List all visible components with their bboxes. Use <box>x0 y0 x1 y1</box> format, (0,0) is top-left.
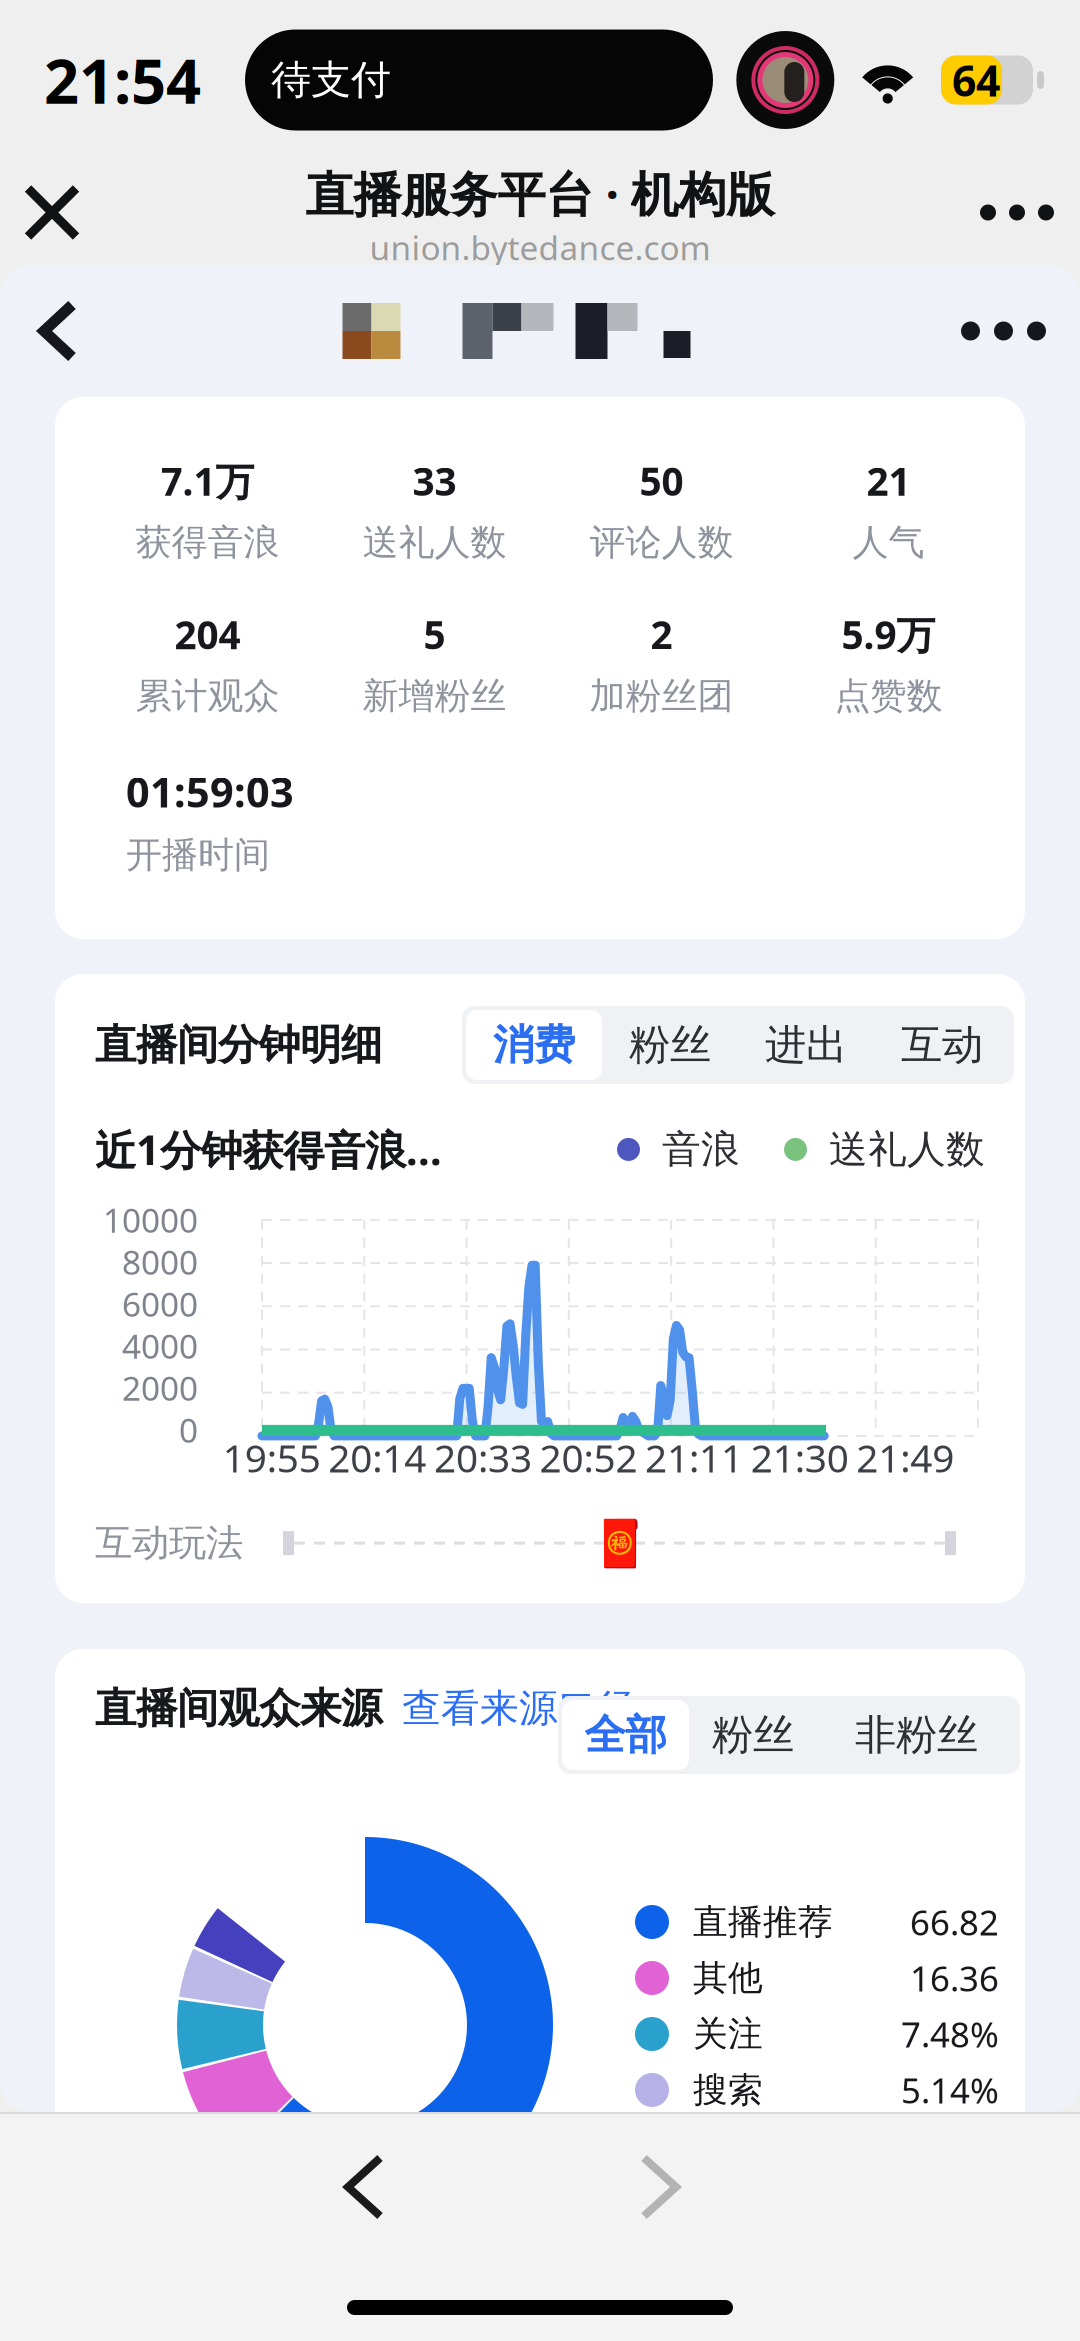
staticText: 0 <box>179 1408 198 1452</box>
button[interactable]: 消费 <box>466 1010 602 1080</box>
staticText: 8000 <box>122 1240 198 1284</box>
button[interactable]: 查看来源口径 <box>382 1685 636 1732</box>
staticText: 21:49 <box>856 1432 954 1483</box>
staticText: 🧧 <box>591 1517 647 1569</box>
button[interactable]: Forward <box>600 2132 720 2242</box>
staticText: 50 <box>639 455 683 506</box>
staticText: 粉丝 <box>629 1020 711 1070</box>
staticText: 互动玩法 <box>95 1520 243 1566</box>
staticText: 搜索 <box>693 2069 763 2111</box>
button[interactable]: 粉丝 <box>689 1700 817 1770</box>
staticText: 10000 <box>103 1198 198 1242</box>
staticText: 66.82 <box>910 1899 999 1945</box>
button[interactable]: More options <box>927 289 1080 372</box>
staticText: 204 <box>174 609 240 660</box>
staticText: 直播间分钟明细 <box>95 1020 382 1070</box>
staticText: 4000 <box>122 1324 198 1368</box>
staticText: 送礼人数 <box>362 520 506 564</box>
staticText: 新增粉丝 <box>362 674 506 718</box>
staticText: 消费 <box>493 1020 575 1070</box>
staticText: 20:33 <box>434 1432 532 1483</box>
staticText: 近1分钟获得音浪... <box>95 1122 442 1177</box>
staticText: 21 <box>866 455 910 506</box>
staticText: 其他 <box>693 1957 763 1999</box>
staticText: 人气 <box>852 520 924 564</box>
staticText: 5.9万 <box>841 609 935 660</box>
staticText: 33 <box>412 455 456 506</box>
staticText: 21:54 <box>44 39 201 121</box>
staticText: 16.36 <box>910 1955 999 2001</box>
staticText: 互动 <box>901 1020 983 1070</box>
staticText: 20:14 <box>328 1432 426 1483</box>
staticText: 累计观众 <box>135 674 279 718</box>
staticText: union.bytedance.com <box>369 225 710 269</box>
button[interactable]: Back <box>0 277 116 385</box>
staticText: 待支付 <box>271 55 391 104</box>
staticText: 粉丝 <box>712 1710 794 1760</box>
button[interactable]: 粉丝 <box>602 1010 738 1080</box>
staticText: 21:11 <box>645 1432 743 1483</box>
staticText: 音浪 <box>662 1126 740 1173</box>
staticText: 7.1万 <box>160 455 254 506</box>
staticText: 2 <box>650 609 672 660</box>
staticText: 全部 <box>584 1710 666 1760</box>
button[interactable]: 进出 <box>738 1010 874 1080</box>
staticText: 评论人数 <box>589 520 733 564</box>
button[interactable]: 互动 <box>874 1010 1010 1080</box>
staticText: 点赞数 <box>834 674 942 718</box>
button[interactable]: 全部 <box>562 1700 689 1770</box>
staticText: 6000 <box>122 1282 198 1326</box>
staticText: 64 <box>952 52 1000 108</box>
staticText: 7.48% <box>901 2011 999 2057</box>
staticText: 送礼人数 <box>829 1126 985 1173</box>
staticText: 获得音浪 <box>135 520 279 564</box>
staticText: 5.14% <box>901 2067 999 2113</box>
staticText: 关注 <box>693 2013 763 2055</box>
staticText: 19:55 <box>223 1432 321 1483</box>
staticText: 加粉丝团 <box>589 674 733 718</box>
staticText: 查看来源口径 <box>402 1685 636 1732</box>
staticText: 进出 <box>765 1020 847 1070</box>
button[interactable]: Back <box>304 2132 424 2242</box>
staticText: 直播推荐 <box>693 1901 833 1943</box>
staticText: 非粉丝 <box>855 1710 978 1760</box>
button[interactable]: More <box>954 168 1080 256</box>
staticText: 01:59:03 <box>126 764 294 819</box>
button[interactable]: Close <box>0 164 104 260</box>
staticText: 直播服务平台 · 机构版 <box>305 161 774 225</box>
button[interactable]: 非粉丝 <box>817 1700 1016 1770</box>
staticText: 开播时间 <box>126 833 270 877</box>
staticText: 5 <box>423 609 445 660</box>
staticText: 2000 <box>122 1366 198 1410</box>
staticText: 21:30 <box>751 1432 849 1483</box>
staticText: 直播间观众来源 <box>95 1683 382 1734</box>
staticText: 20:52 <box>539 1432 637 1483</box>
